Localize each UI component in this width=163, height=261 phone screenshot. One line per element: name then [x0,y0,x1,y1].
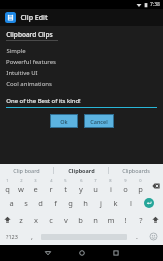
staticText: q [5,184,10,194]
button[interactable]: ? [133,211,148,228]
button[interactable]: n [88,211,103,228]
button[interactable]: 4 [43,177,58,194]
button[interactable]: Emoji [144,228,163,245]
staticText: n [93,215,98,225]
button[interactable]: . [129,228,144,245]
staticText: 0 [139,178,142,183]
staticText: b [78,215,83,225]
button[interactable]: x [28,211,43,228]
button[interactable]: 1 [0,177,14,194]
button[interactable]: g [63,194,78,211]
staticText: k [113,198,118,208]
staticText: , [31,232,33,242]
staticText: 8 [109,178,112,183]
button[interactable]: Shift [148,211,163,228]
staticText: Ok [60,118,68,125]
staticText: x [34,215,38,225]
staticText: v [64,215,68,225]
staticText: u [93,184,98,194]
staticText: Clip board [13,167,40,174]
staticText: Clipboard Clips [6,30,53,39]
button[interactable]: 0 [133,177,148,194]
button[interactable]: 3 [28,177,43,194]
staticText: . [136,232,138,242]
button[interactable]: 5 [58,177,73,194]
button[interactable]: , [24,228,39,245]
button[interactable]: Backspace [148,177,163,194]
staticText: j [100,198,102,208]
button[interactable]: ! [118,211,133,228]
staticText: l [130,198,132,208]
staticText: s [24,198,28,208]
staticText: Clipboards [122,167,150,174]
staticText: Cool animations [6,80,52,88]
button[interactable]: a [4,194,18,211]
staticText: Clipboard [68,167,95,174]
staticText: Cancel [90,118,108,125]
staticText: f [54,198,57,208]
button[interactable]: v [58,211,73,228]
staticText: o [123,184,128,194]
staticText: d [38,198,43,208]
staticText: 7 [94,178,97,183]
staticText: 2 [20,178,23,183]
button[interactable]: l [123,194,138,211]
button[interactable]: Cancel [85,115,113,127]
staticText: 1 [6,178,9,183]
button[interactable]: Shift [0,211,14,228]
staticText: 7:38 [150,1,160,8]
staticText: 5 [64,178,67,183]
button[interactable]: Home [65,245,99,261]
staticText: e [33,184,38,194]
button[interactable]: Clipboards [109,164,163,177]
staticText: g [68,198,73,208]
button[interactable]: k [108,194,123,211]
button[interactable]: s [18,194,33,211]
staticText: z [19,215,23,225]
staticText: h [83,198,88,208]
button[interactable]: Ok [51,115,77,127]
staticText: 9 [124,178,127,183]
staticText: Simple [6,47,26,55]
button[interactable]: 8 [103,177,118,194]
button[interactable]: Recents [99,245,133,261]
staticText: r [49,184,53,194]
staticText: ?123 [6,233,18,240]
button[interactable]: h [78,194,93,211]
button[interactable]: f [48,194,63,211]
button[interactable]: c [43,211,58,228]
button[interactable]: z [14,211,28,228]
staticText: ! [124,215,127,225]
button[interactable]: 6 [73,177,88,194]
button[interactable]: 9 [118,177,133,194]
staticText: a [9,198,14,208]
staticText: w [18,184,24,194]
button[interactable]: m [103,211,118,228]
button[interactable]: d [33,194,48,211]
staticText: 3 [34,178,37,183]
staticText: Intuitive UI [6,69,38,77]
staticText: Powerful features [6,58,56,66]
button[interactable]: ?123 [0,228,24,245]
staticText: c [49,215,53,225]
button[interactable]: b [73,211,88,228]
staticText: i [110,184,112,194]
button[interactable]: Enter [138,194,159,211]
staticText: t [64,184,67,194]
button[interactable]: j [93,194,108,211]
staticText: 6 [80,178,83,183]
staticText: 4 [50,178,53,183]
staticText: y [79,184,83,194]
button[interactable]: Space [39,228,129,245]
staticText: Clip Edit [20,13,48,23]
button[interactable]: Clip board [0,164,53,177]
button[interactable]: Back [31,245,65,261]
button[interactable]: 2 [14,177,28,194]
staticText: p [138,184,143,194]
staticText: One of the Best of its kind! [6,97,81,105]
button[interactable]: Clipboard [54,164,108,177]
staticText: m [107,215,115,225]
staticText: ? [139,215,143,225]
button[interactable]: 7 [88,177,103,194]
